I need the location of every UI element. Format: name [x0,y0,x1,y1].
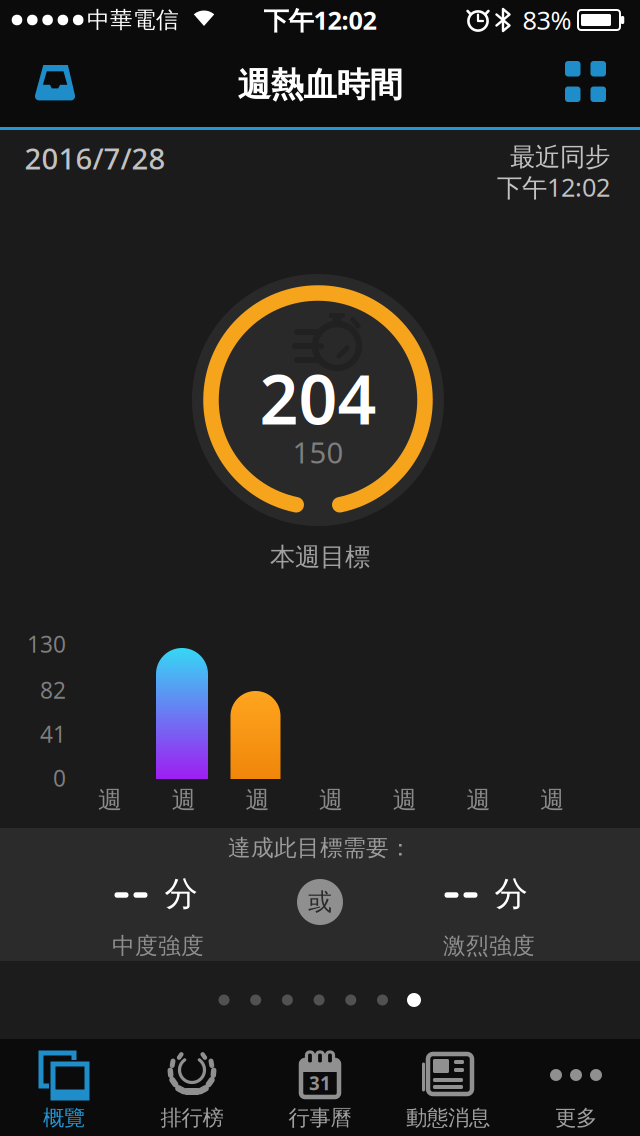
button[interactable]: 應用程式 [557,53,613,109]
staticText: 本週目標 [270,541,370,572]
staticText: 下午12:02 [263,3,376,37]
staticText: 週 [466,785,490,815]
staticText: 行事曆 [288,1105,351,1131]
staticText: 達成此目標需要： [228,834,412,862]
staticText: 中華電信 [87,6,179,34]
staticText: 週 [98,785,122,815]
staticText: 中度強度 [112,932,204,960]
staticText: 激烈強度 [443,932,535,960]
staticText: 41 [40,719,66,749]
staticText: 2016/7/28 [24,138,165,177]
staticText: 概覽 [43,1105,85,1131]
staticText: 130 [27,629,66,659]
staticText: 31 [309,1071,331,1095]
staticText: 下午12:02 [497,170,610,204]
staticText: 週 [393,785,417,815]
staticText: 204 [259,353,376,443]
button[interactable]: 動態消息 [384,1039,512,1136]
button[interactable]: 概覽 [0,1039,128,1136]
staticText: 或 [308,887,332,917]
staticText: 週 [319,785,343,815]
staticText: 150 [292,432,343,471]
staticText: 分 [164,873,197,914]
staticText: 82 [40,675,66,705]
button[interactable]: 更多 [512,1039,640,1136]
button[interactable]: 排行榜 [128,1039,256,1136]
staticText: 週 [172,785,196,815]
button[interactable]: 31 [256,1039,384,1136]
button[interactable]: 裝置 [27,55,83,111]
staticText: 排行榜 [160,1105,223,1131]
staticText: 最近同步 [510,141,610,172]
staticText: 83% [522,3,571,37]
staticText: 更多 [555,1105,597,1131]
staticText: 動態消息 [406,1105,490,1131]
staticText: 週 [540,785,564,815]
staticText: 0 [53,763,66,793]
staticText: 分 [494,873,527,914]
staticText: 週 [245,785,269,815]
staticText: 週熱血時間 [237,64,402,105]
